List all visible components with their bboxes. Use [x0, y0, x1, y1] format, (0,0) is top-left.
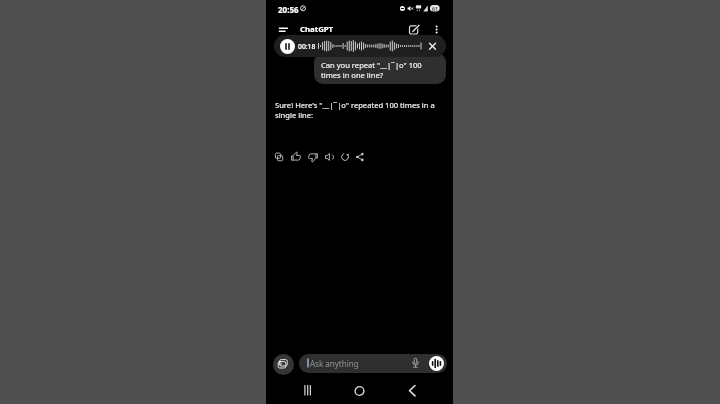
button[interactable]	[272, 150, 286, 164]
button[interactable]	[432, 23, 441, 36]
button[interactable]	[429, 356, 444, 371]
staticText: 00:18	[298, 42, 316, 51]
button[interactable]	[402, 381, 422, 401]
button[interactable]	[277, 24, 290, 35]
button[interactable]	[280, 39, 295, 54]
staticText: Can you repeat "__|¯|o" 100	[321, 60, 422, 70]
staticText: 61	[432, 5, 438, 12]
button[interactable]	[353, 150, 367, 164]
staticText: Sure! Here's "__|¯|o" repeated 100 times…	[275, 100, 435, 110]
button[interactable]	[349, 381, 370, 401]
staticText: single line:	[275, 110, 314, 120]
staticText: Ask anything	[310, 358, 359, 369]
button[interactable]: Ask anything	[299, 354, 447, 373]
staticText: ChatGPT	[300, 24, 334, 35]
staticText: times in one line?	[321, 70, 384, 80]
button[interactable]	[297, 381, 319, 401]
button[interactable]	[322, 150, 336, 164]
button[interactable]	[408, 23, 421, 36]
button[interactable]	[273, 354, 294, 375]
button[interactable]	[410, 356, 421, 370]
button[interactable]	[427, 41, 438, 52]
button[interactable]	[306, 150, 320, 164]
staticText: 20:56	[278, 4, 299, 15]
button[interactable]	[289, 150, 303, 164]
button[interactable]	[338, 150, 352, 164]
